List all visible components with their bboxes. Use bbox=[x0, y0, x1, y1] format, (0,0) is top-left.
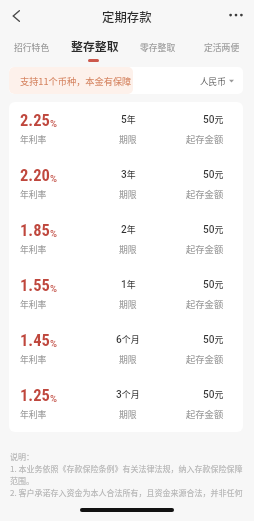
staticText: 1年 bbox=[121, 278, 136, 291]
button[interactable]: Back bbox=[4, 4, 28, 28]
staticText: % bbox=[50, 393, 58, 404]
staticText: 支持11个币种，本金有保障 bbox=[20, 74, 132, 87]
staticText: 整存整取 bbox=[71, 37, 119, 54]
staticText: 年利率 bbox=[20, 353, 47, 366]
button[interactable]: 2.20 bbox=[9, 157, 243, 212]
staticText: 定期存款 bbox=[102, 8, 152, 26]
staticText: 说明： bbox=[10, 451, 34, 463]
staticText: 年利率 bbox=[20, 133, 47, 146]
staticText: 期限 bbox=[119, 353, 137, 366]
staticText: 1.25 bbox=[20, 386, 50, 405]
staticText: 起存金额 bbox=[186, 352, 224, 365]
button[interactable]: 1.85 bbox=[9, 212, 243, 267]
staticText: 期限 bbox=[119, 133, 137, 146]
staticText: 2年 bbox=[121, 223, 136, 236]
button[interactable]: 人民币 bbox=[192, 70, 243, 92]
staticText: 50元 bbox=[203, 113, 224, 126]
staticText: % bbox=[50, 338, 58, 349]
staticText: 3年 bbox=[121, 168, 136, 181]
button[interactable]: 2.25 bbox=[9, 102, 243, 157]
staticText: 年利率 bbox=[20, 188, 47, 201]
staticText: 年利率 bbox=[20, 408, 47, 421]
staticText: 起存金额 bbox=[186, 187, 224, 200]
staticText: % bbox=[50, 173, 58, 184]
button[interactable]: 定活两便 bbox=[190, 0, 254, 64]
staticText: 1. 本业务依照《存款保险条例》有关法律法规，纳入存款保险保障范围。 bbox=[10, 463, 246, 487]
button[interactable]: 1.55 bbox=[9, 267, 243, 322]
button[interactable]: 1.45 bbox=[9, 322, 243, 377]
staticText: 人民币 bbox=[200, 75, 226, 87]
staticText: 年利率 bbox=[20, 243, 47, 256]
staticText: 起存金额 bbox=[186, 407, 224, 420]
staticText: 2.25 bbox=[20, 111, 50, 130]
button[interactable]: 招行特色 bbox=[0, 0, 63, 64]
staticText: 定活两便 bbox=[204, 41, 240, 54]
staticText: 3个月 bbox=[116, 388, 140, 401]
staticText: 2.20 bbox=[20, 166, 50, 185]
staticText: % bbox=[50, 228, 58, 239]
staticText: % bbox=[50, 118, 58, 129]
staticText: 期限 bbox=[119, 408, 137, 421]
button[interactable]: 1.25 bbox=[9, 377, 243, 432]
staticText: 50元 bbox=[203, 278, 224, 291]
staticText: % bbox=[50, 283, 58, 294]
staticText: 50元 bbox=[203, 168, 224, 181]
staticText: 1.55 bbox=[20, 276, 50, 295]
staticText: 50元 bbox=[203, 388, 224, 401]
staticText: 50元 bbox=[203, 333, 224, 346]
staticText: 招行特色 bbox=[14, 41, 50, 54]
staticText: 6个月 bbox=[116, 333, 140, 346]
staticText: 起存金额 bbox=[186, 132, 224, 145]
staticText: 期限 bbox=[119, 188, 137, 201]
staticText: 50元 bbox=[203, 223, 224, 236]
staticText: 5年 bbox=[121, 113, 136, 126]
staticText: 起存金额 bbox=[186, 297, 224, 310]
button[interactable]: 零存整取 bbox=[126, 0, 190, 64]
staticText: 2. 客户承诺存入资金为本人合法所有，且资金来源合法，并非任何 bbox=[10, 487, 243, 499]
staticText: 期限 bbox=[119, 298, 137, 311]
button[interactable]: More options bbox=[224, 3, 248, 27]
staticText: 年利率 bbox=[20, 298, 47, 311]
staticText: 1.85 bbox=[20, 221, 50, 240]
button[interactable]: 整存整取 bbox=[63, 0, 126, 64]
staticText: 1.45 bbox=[20, 331, 50, 350]
staticText: 期限 bbox=[119, 243, 137, 256]
staticText: 起存金额 bbox=[186, 242, 224, 255]
staticText: 零存整取 bbox=[140, 41, 176, 54]
